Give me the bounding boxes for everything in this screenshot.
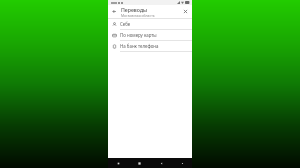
staticText: Московская область bbox=[121, 13, 155, 18]
button[interactable]: Assistant bbox=[179, 160, 185, 166]
button[interactable]: На банк телефона bbox=[108, 41, 192, 51]
staticText: Себе bbox=[120, 21, 131, 27]
button[interactable]: Back bbox=[110, 7, 119, 16]
button[interactable]: Себе bbox=[108, 19, 192, 29]
button[interactable]: По номеру карты bbox=[108, 30, 192, 40]
staticText: На банк телефона bbox=[120, 43, 159, 49]
staticText: По номеру карты bbox=[120, 32, 157, 38]
button[interactable]: Recents bbox=[115, 160, 121, 166]
button[interactable]: Back bbox=[158, 160, 164, 166]
button[interactable]: Home bbox=[136, 160, 142, 166]
button[interactable]: Close bbox=[181, 7, 190, 16]
staticText: Переводы bbox=[121, 6, 148, 13]
